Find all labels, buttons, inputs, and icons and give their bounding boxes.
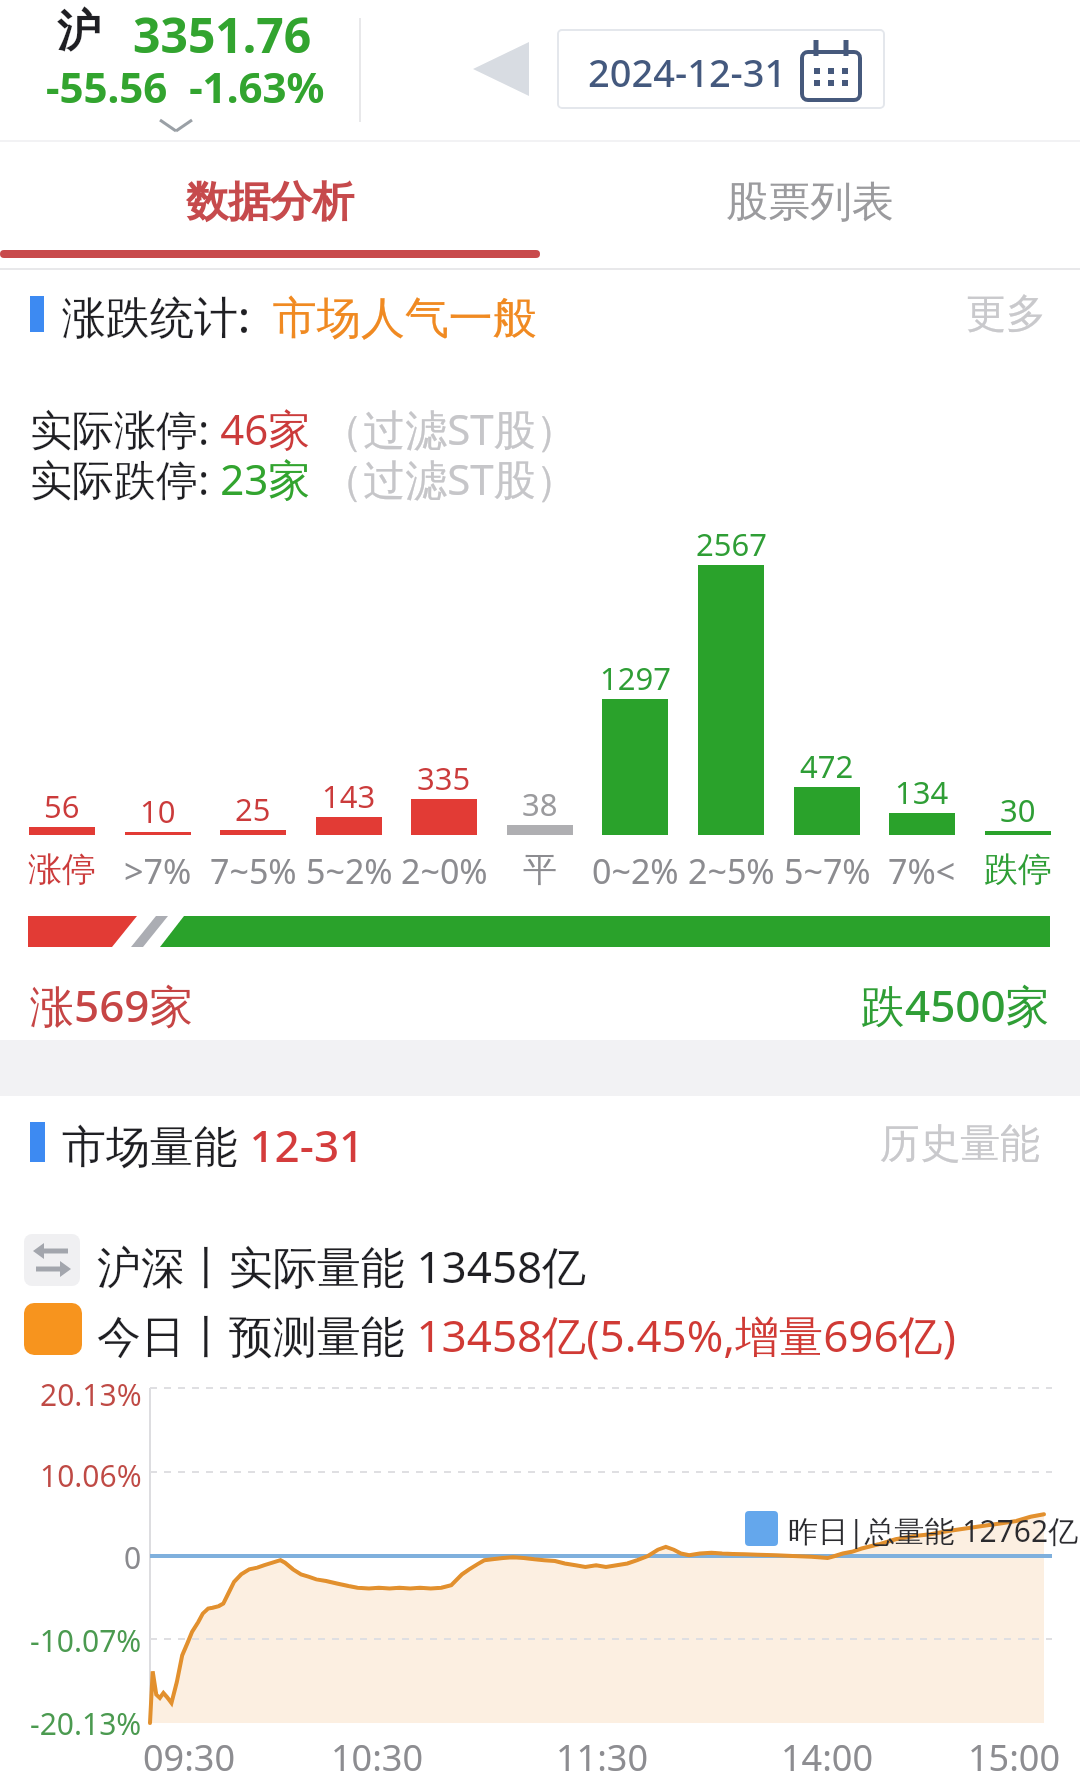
staticText: 335: [417, 757, 471, 799]
staticText: 涨569家: [30, 975, 194, 1035]
staticText: 0~2%: [592, 848, 679, 894]
staticText: 平: [523, 848, 557, 891]
staticText: 56: [44, 785, 80, 827]
button[interactable]: 历史量能: [880, 1118, 1060, 1168]
button[interactable]: 股票列表: [540, 150, 1080, 254]
staticText: 历史量能: [880, 1118, 1040, 1168]
staticText: 0: [124, 1537, 142, 1578]
staticText: 跌停: [984, 848, 1052, 891]
staticText: 11:30: [556, 1733, 649, 1782]
staticText: 20.13%: [40, 1374, 142, 1415]
staticText: 今日丨预测量能 13458亿(5.45%,增量696亿): [97, 1305, 956, 1365]
staticText: 5~2%: [306, 848, 393, 894]
staticText: 数据分析: [186, 176, 354, 229]
staticText: -20.13%: [30, 1703, 142, 1744]
staticText: 15:00: [968, 1733, 1061, 1782]
staticText: 10:30: [331, 1733, 424, 1782]
staticText: 昨日|总量能 12762亿: [788, 1510, 1079, 1551]
staticText: 2024-12-31: [588, 46, 787, 98]
staticText: 38: [522, 783, 558, 825]
staticText: 25: [235, 788, 271, 830]
staticText: 1297: [600, 657, 671, 699]
staticText: 跌4500家: [861, 975, 1050, 1035]
staticText: 14:00: [781, 1733, 874, 1782]
staticText: 7%<: [888, 848, 956, 894]
staticText: 30: [1000, 789, 1036, 831]
staticText: 5~7%: [784, 848, 871, 894]
staticText: >7%: [124, 848, 192, 894]
staticText: 7~5%: [210, 848, 297, 894]
staticText: 涨跌统计: 市场人气一般: [62, 286, 537, 346]
staticText: 沪: [57, 4, 101, 59]
staticText: 市场量能 12-31: [62, 1115, 365, 1175]
staticText: -55.56 -1.63%: [46, 58, 325, 115]
staticText: 143: [322, 775, 376, 817]
staticText: 09:30: [143, 1733, 236, 1782]
staticText: 134: [895, 771, 949, 813]
staticText: 沪深丨实际量能 13458亿: [97, 1236, 587, 1296]
button[interactable]: 2024-12-31: [558, 30, 884, 108]
button[interactable]: 更多: [966, 288, 1060, 338]
staticText: 实际涨停: 46家 （过滤ST股）: [30, 400, 578, 457]
staticText: 10: [140, 790, 176, 832]
button[interactable]: 数据分析: [0, 150, 540, 254]
staticText: 更多: [966, 288, 1046, 338]
staticText: 实际跌停: 23家 （过滤ST股）: [30, 450, 578, 507]
staticText: 2~0%: [401, 848, 488, 894]
staticText: 2~5%: [688, 848, 775, 894]
staticText: 472: [800, 745, 854, 787]
staticText: 3351.76: [133, 2, 312, 67]
staticText: 涨停: [28, 848, 96, 891]
staticText: 股票列表: [726, 176, 894, 229]
staticText: -10.07%: [30, 1620, 142, 1661]
staticText: 2567: [696, 523, 767, 565]
staticText: 10.06%: [40, 1455, 142, 1496]
